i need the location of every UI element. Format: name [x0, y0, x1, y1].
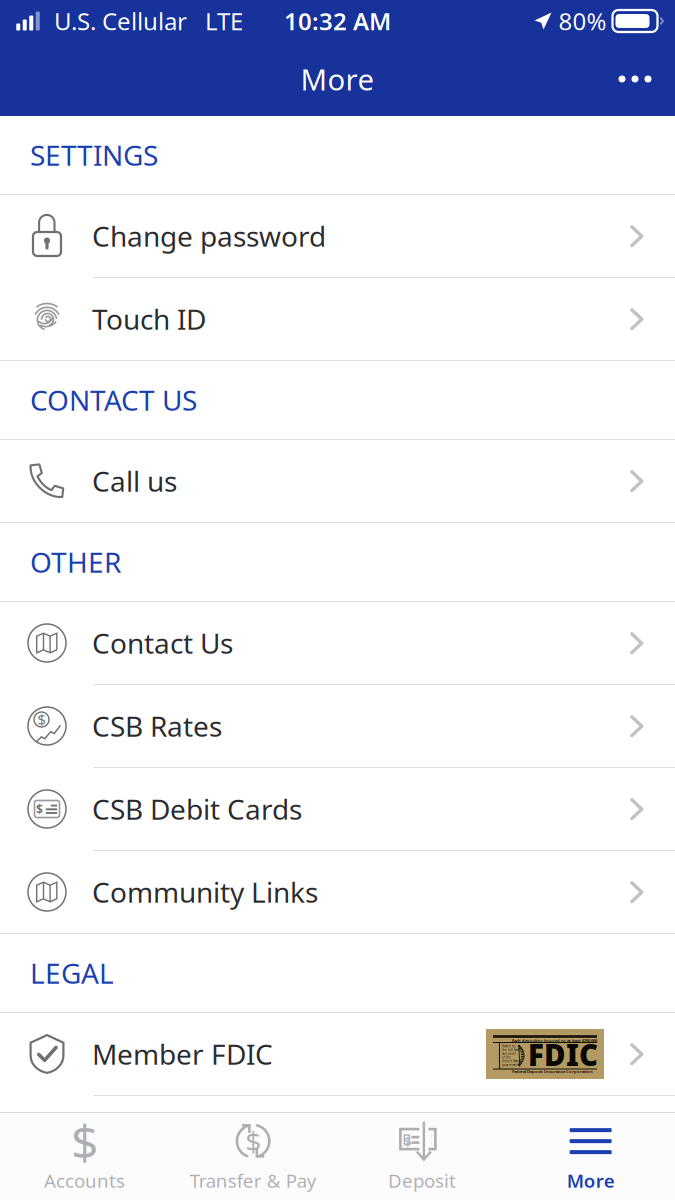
button[interactable]: Community Links: [0, 851, 675, 933]
button[interactable]: Contact Us: [0, 602, 675, 684]
staticText: CSB Debit Cards: [92, 790, 302, 828]
staticText: LEGAL: [30, 954, 114, 992]
staticText: Member FDIC: [92, 1035, 273, 1073]
button[interactable]: Touch ID: [0, 278, 675, 360]
staticText: $: [71, 1109, 98, 1173]
staticText: $: [37, 710, 45, 729]
button[interactable]: $: [169, 1112, 338, 1200]
button[interactable]: $: [337, 1112, 506, 1200]
button[interactable]: Call us: [0, 440, 675, 522]
staticText: United States: [502, 1059, 520, 1063]
staticText: Community Links: [92, 873, 318, 911]
staticText: government: [502, 1063, 519, 1067]
staticText: Change password: [92, 217, 326, 255]
staticText: Backed by: [502, 1044, 515, 1048]
staticText: Call us: [92, 462, 177, 500]
staticText: 10:32 AM: [284, 5, 391, 37]
staticText: Each depositor insured to at least $250,…: [512, 1038, 597, 1043]
staticText: $: [404, 1133, 412, 1150]
staticText: U.S. Cellular LTE: [42, 5, 243, 37]
staticText: the full faith: [502, 1048, 520, 1052]
staticText: Contact Us: [92, 624, 233, 662]
staticText: Federal Deposit Insurance Corporation: [512, 1069, 593, 1074]
button[interactable]: More options: [595, 51, 675, 107]
staticText: Transfer & Pay: [190, 1168, 317, 1193]
staticText: SETTINGS: [30, 136, 158, 174]
staticText: $: [36, 801, 43, 817]
staticText: of the: [502, 1056, 511, 1059]
button[interactable]: Member FDIC: [0, 1013, 675, 1095]
staticText: Touch ID: [92, 300, 206, 338]
button[interactable]: $: [0, 685, 675, 767]
button[interactable]: $: [0, 1112, 169, 1200]
staticText: 80%: [552, 5, 612, 37]
button[interactable]: $: [0, 768, 675, 850]
staticText: CONTACT US: [30, 381, 197, 419]
staticText: OTHER: [30, 543, 121, 581]
staticText: FDIC: [528, 1035, 598, 1074]
staticText: More: [567, 1168, 615, 1193]
staticText: and credit: [502, 1052, 516, 1055]
staticText: Deposit: [388, 1168, 456, 1193]
staticText: Accounts: [44, 1168, 125, 1193]
staticText: $: [245, 1122, 261, 1160]
staticText: CSB Rates: [92, 707, 222, 745]
button[interactable]: More: [506, 1112, 675, 1200]
button[interactable]: Change password: [0, 195, 675, 277]
staticText: More: [300, 59, 374, 98]
